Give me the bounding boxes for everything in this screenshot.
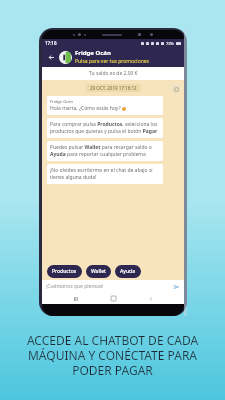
button[interactable]: Back (46, 52, 56, 62)
staticText: Pulsa para ver tus promociones (75, 58, 149, 65)
staticText: ACCEDE AL CHATBOT DE CADA MÁQUINA Y CONÉ… (0, 332, 225, 378)
button[interactable]: ¡No olvides escribirme en el chat de aba… (47, 164, 163, 184)
button[interactable]: Scroll down (171, 84, 181, 94)
button[interactable]: Fridge Ocán (47, 96, 163, 115)
button[interactable]: Send (171, 282, 180, 291)
button[interactable]: Productos (47, 265, 82, 278)
staticText: Wallet (91, 268, 106, 275)
button[interactable]: Profile (59, 51, 72, 64)
staticText: Fridge Ocán (50, 99, 74, 104)
button[interactable]: Para comprar pulsa Productos, selecciona… (47, 118, 163, 138)
staticText: ¡Cuéntanos que piensas! (46, 283, 171, 290)
staticText: 17:16 (45, 40, 57, 46)
staticText: Hola marta, ¿Cómo estás hoy? (50, 105, 121, 112)
button[interactable]: Puedes pulsar Wallet para recargar saldo… (47, 141, 163, 161)
staticText: Tu saldo es de 2,00 € (89, 70, 138, 77)
staticText: Para comprar pulsa Productos, selecciona… (50, 121, 160, 135)
staticText: Ayuda (120, 268, 136, 275)
staticText: Fridge Ocán (75, 49, 111, 57)
staticText: 29 OCT. 2019 17:16:12 (90, 85, 137, 91)
button[interactable]: Wallet (86, 265, 111, 278)
staticText: ¡No olvides escribirme en el chat de aba… (50, 167, 160, 181)
button[interactable]: Recents (71, 294, 80, 303)
button[interactable]: Back (146, 294, 155, 303)
staticText: Productos (52, 268, 77, 275)
button[interactable]: Ayuda (115, 265, 141, 278)
staticText: Puedes pulsar Wallet para recargar saldo… (50, 144, 160, 158)
button[interactable]: Home (109, 294, 118, 303)
staticText: 73% (166, 41, 174, 46)
